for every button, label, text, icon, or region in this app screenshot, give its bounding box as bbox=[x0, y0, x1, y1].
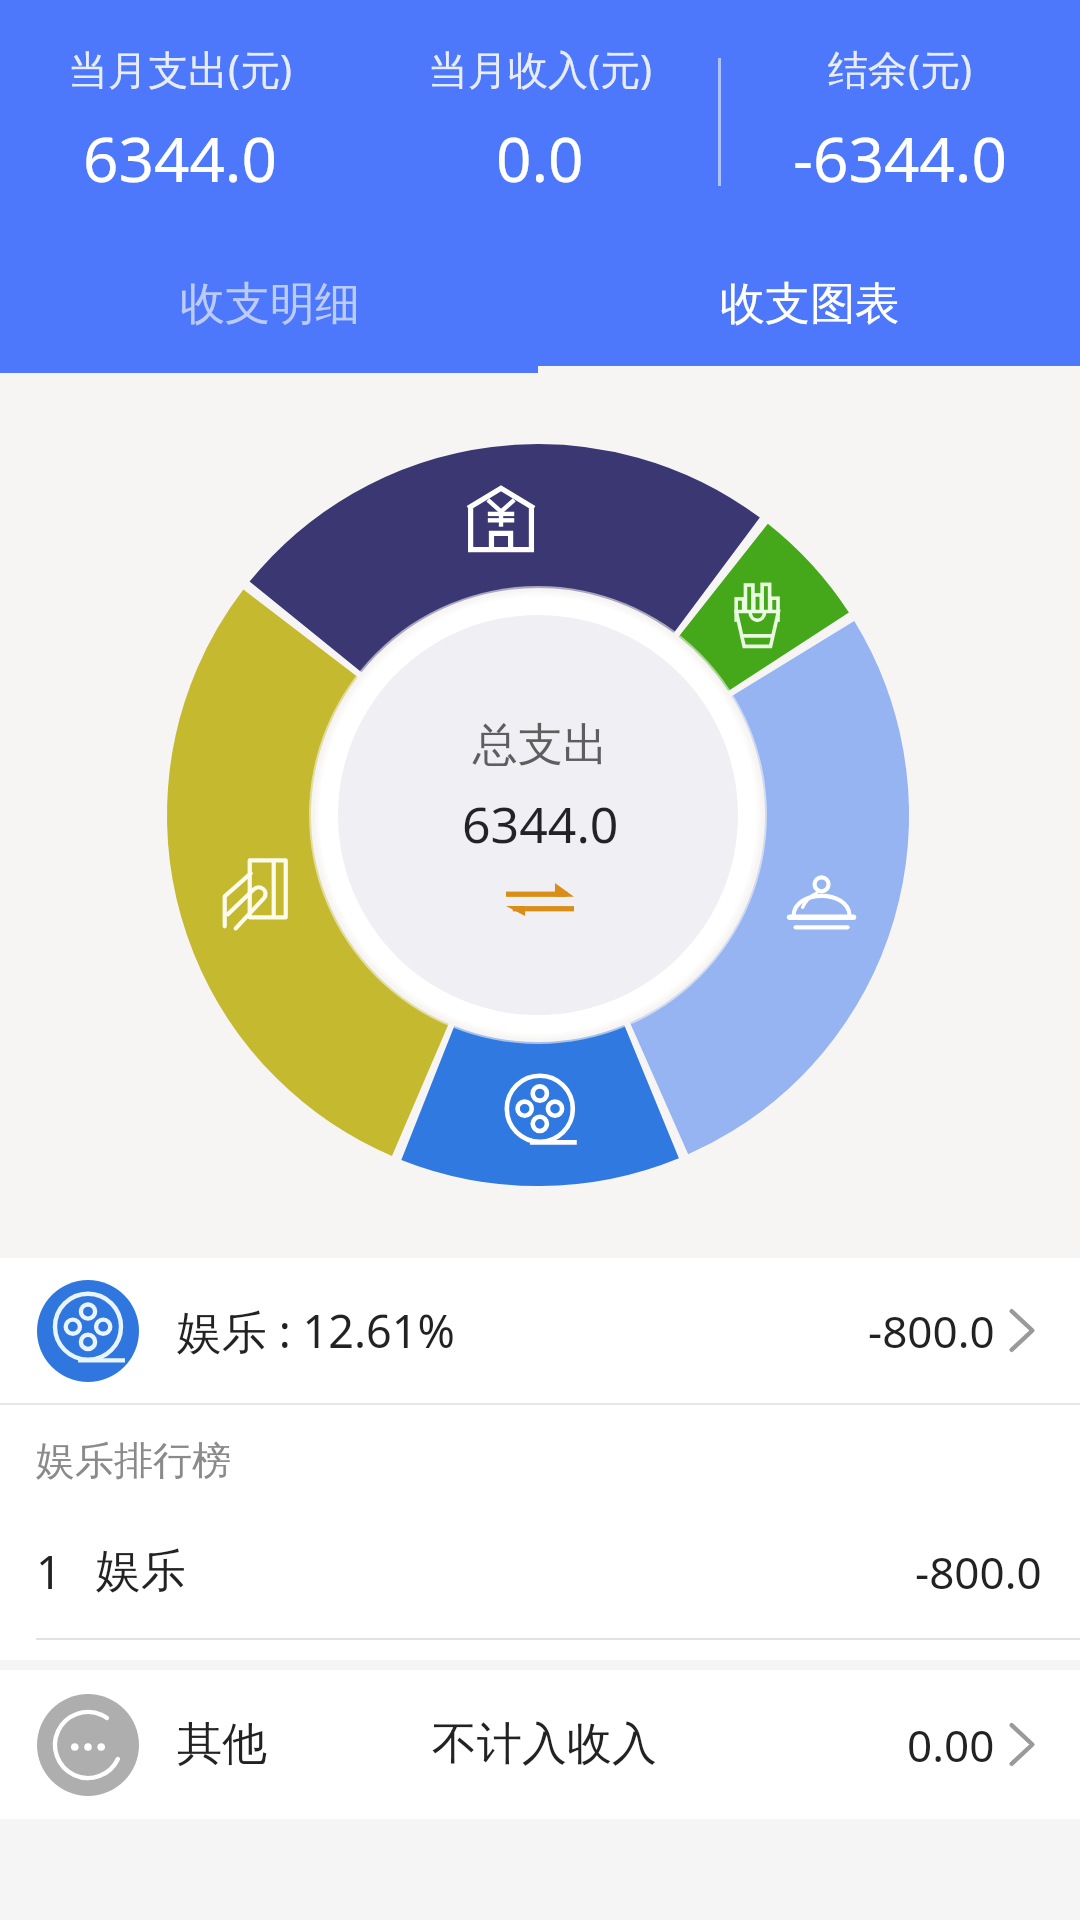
staticText: 结余(元) bbox=[828, 41, 972, 96]
button[interactable]: 其他 bbox=[0, 1670, 1080, 1819]
button[interactable]: 收支图表 bbox=[540, 242, 1080, 366]
staticText: 娱乐 : 12.61% bbox=[177, 1300, 455, 1361]
button[interactable]: 娱乐 : 12.61% bbox=[0, 1258, 1080, 1403]
staticText: 收支图表 bbox=[720, 276, 900, 333]
button[interactable]: 收支明细 bbox=[0, 242, 540, 366]
staticText: 当月收入(元) bbox=[428, 41, 652, 96]
staticText: 不计入收入 bbox=[432, 1716, 657, 1773]
staticText: 6344.0 bbox=[83, 116, 277, 200]
staticText: 0.0 bbox=[496, 116, 584, 200]
staticText: -800.0 bbox=[915, 1542, 1042, 1602]
staticText: 其他 bbox=[177, 1716, 267, 1773]
staticText: 1 bbox=[36, 1541, 62, 1602]
staticText: 娱乐 bbox=[96, 1543, 186, 1600]
staticText: 娱乐排行榜 bbox=[36, 1436, 231, 1485]
staticText: -6344.0 bbox=[793, 116, 1007, 200]
staticText: 当月支出(元) bbox=[68, 41, 292, 96]
staticText: 6344.0 bbox=[462, 790, 619, 858]
staticText: 0.00 bbox=[907, 1715, 995, 1775]
staticText: 总支出 bbox=[473, 717, 608, 774]
staticText: -800.0 bbox=[868, 1301, 995, 1361]
staticText: 收支明细 bbox=[180, 276, 360, 333]
